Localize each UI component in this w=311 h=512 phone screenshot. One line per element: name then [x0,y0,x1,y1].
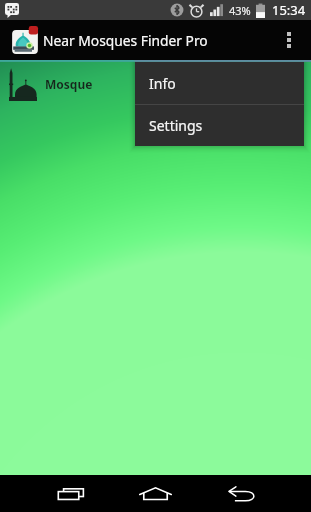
staticText: Settings [149,116,203,135]
staticText: Mosque [45,76,93,92]
staticText: 15:34 [272,1,306,19]
button[interactable]: Recent apps [28,475,114,512]
staticText: Near Mosques Finder Pro [43,31,208,50]
button[interactable]: More options [267,20,311,60]
button[interactable]: Back [198,475,284,512]
button[interactable]: Settings [135,105,304,146]
staticText: Info [149,74,176,93]
button[interactable]: Info [135,62,304,104]
staticText: 43% [229,3,251,18]
button[interactable]: Home [112,475,198,512]
